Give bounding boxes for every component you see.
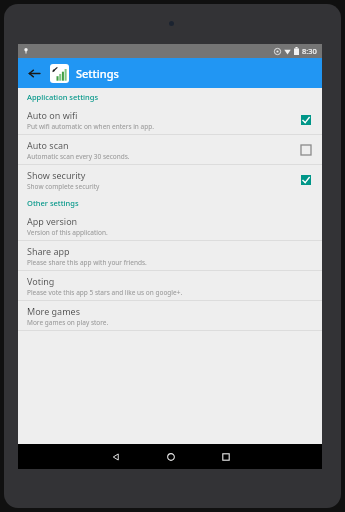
- staticText: Please share this app with your friends.: [27, 258, 147, 267]
- button[interactable]: App version: [18, 211, 322, 240]
- staticText: More games on play store.: [27, 318, 109, 327]
- staticText: More games: [27, 305, 80, 317]
- staticText: Application settings: [27, 92, 99, 102]
- staticText: App version: [27, 215, 78, 227]
- staticText: Version of this application.: [27, 228, 108, 237]
- button[interactable]: Checked: [298, 172, 314, 188]
- button[interactable]: Unchecked: [298, 142, 314, 158]
- button[interactable]: Home: [161, 447, 181, 467]
- button[interactable]: Show security: [18, 165, 322, 194]
- button[interactable]: Back: [24, 63, 44, 83]
- staticText: Show complete security: [27, 182, 100, 191]
- staticText: Put wifi automatic on when enters in app…: [27, 122, 154, 131]
- staticText: Show security: [27, 169, 86, 181]
- button[interactable]: Voting: [18, 271, 322, 300]
- staticText: Please vote this app 5 stars and like us…: [27, 288, 183, 297]
- staticText: Share app: [27, 245, 70, 257]
- staticText: Other settings: [27, 198, 79, 208]
- button[interactable]: Recent apps: [216, 447, 236, 467]
- staticText: Voting: [27, 275, 55, 287]
- staticText: Auto scan: [27, 139, 69, 151]
- button[interactable]: Checked: [298, 112, 314, 128]
- button[interactable]: Auto scan: [18, 135, 322, 164]
- staticText: Settings: [76, 66, 119, 81]
- button[interactable]: More games: [18, 301, 322, 330]
- staticText: 8:30: [302, 46, 317, 56]
- staticText: Auto on wifi: [27, 109, 78, 121]
- staticText: Automatic scan every 30 seconds.: [27, 152, 130, 161]
- button[interactable]: Share app: [18, 241, 322, 270]
- button[interactable]: Auto on wifi: [18, 105, 322, 134]
- button[interactable]: Back: [106, 447, 126, 467]
